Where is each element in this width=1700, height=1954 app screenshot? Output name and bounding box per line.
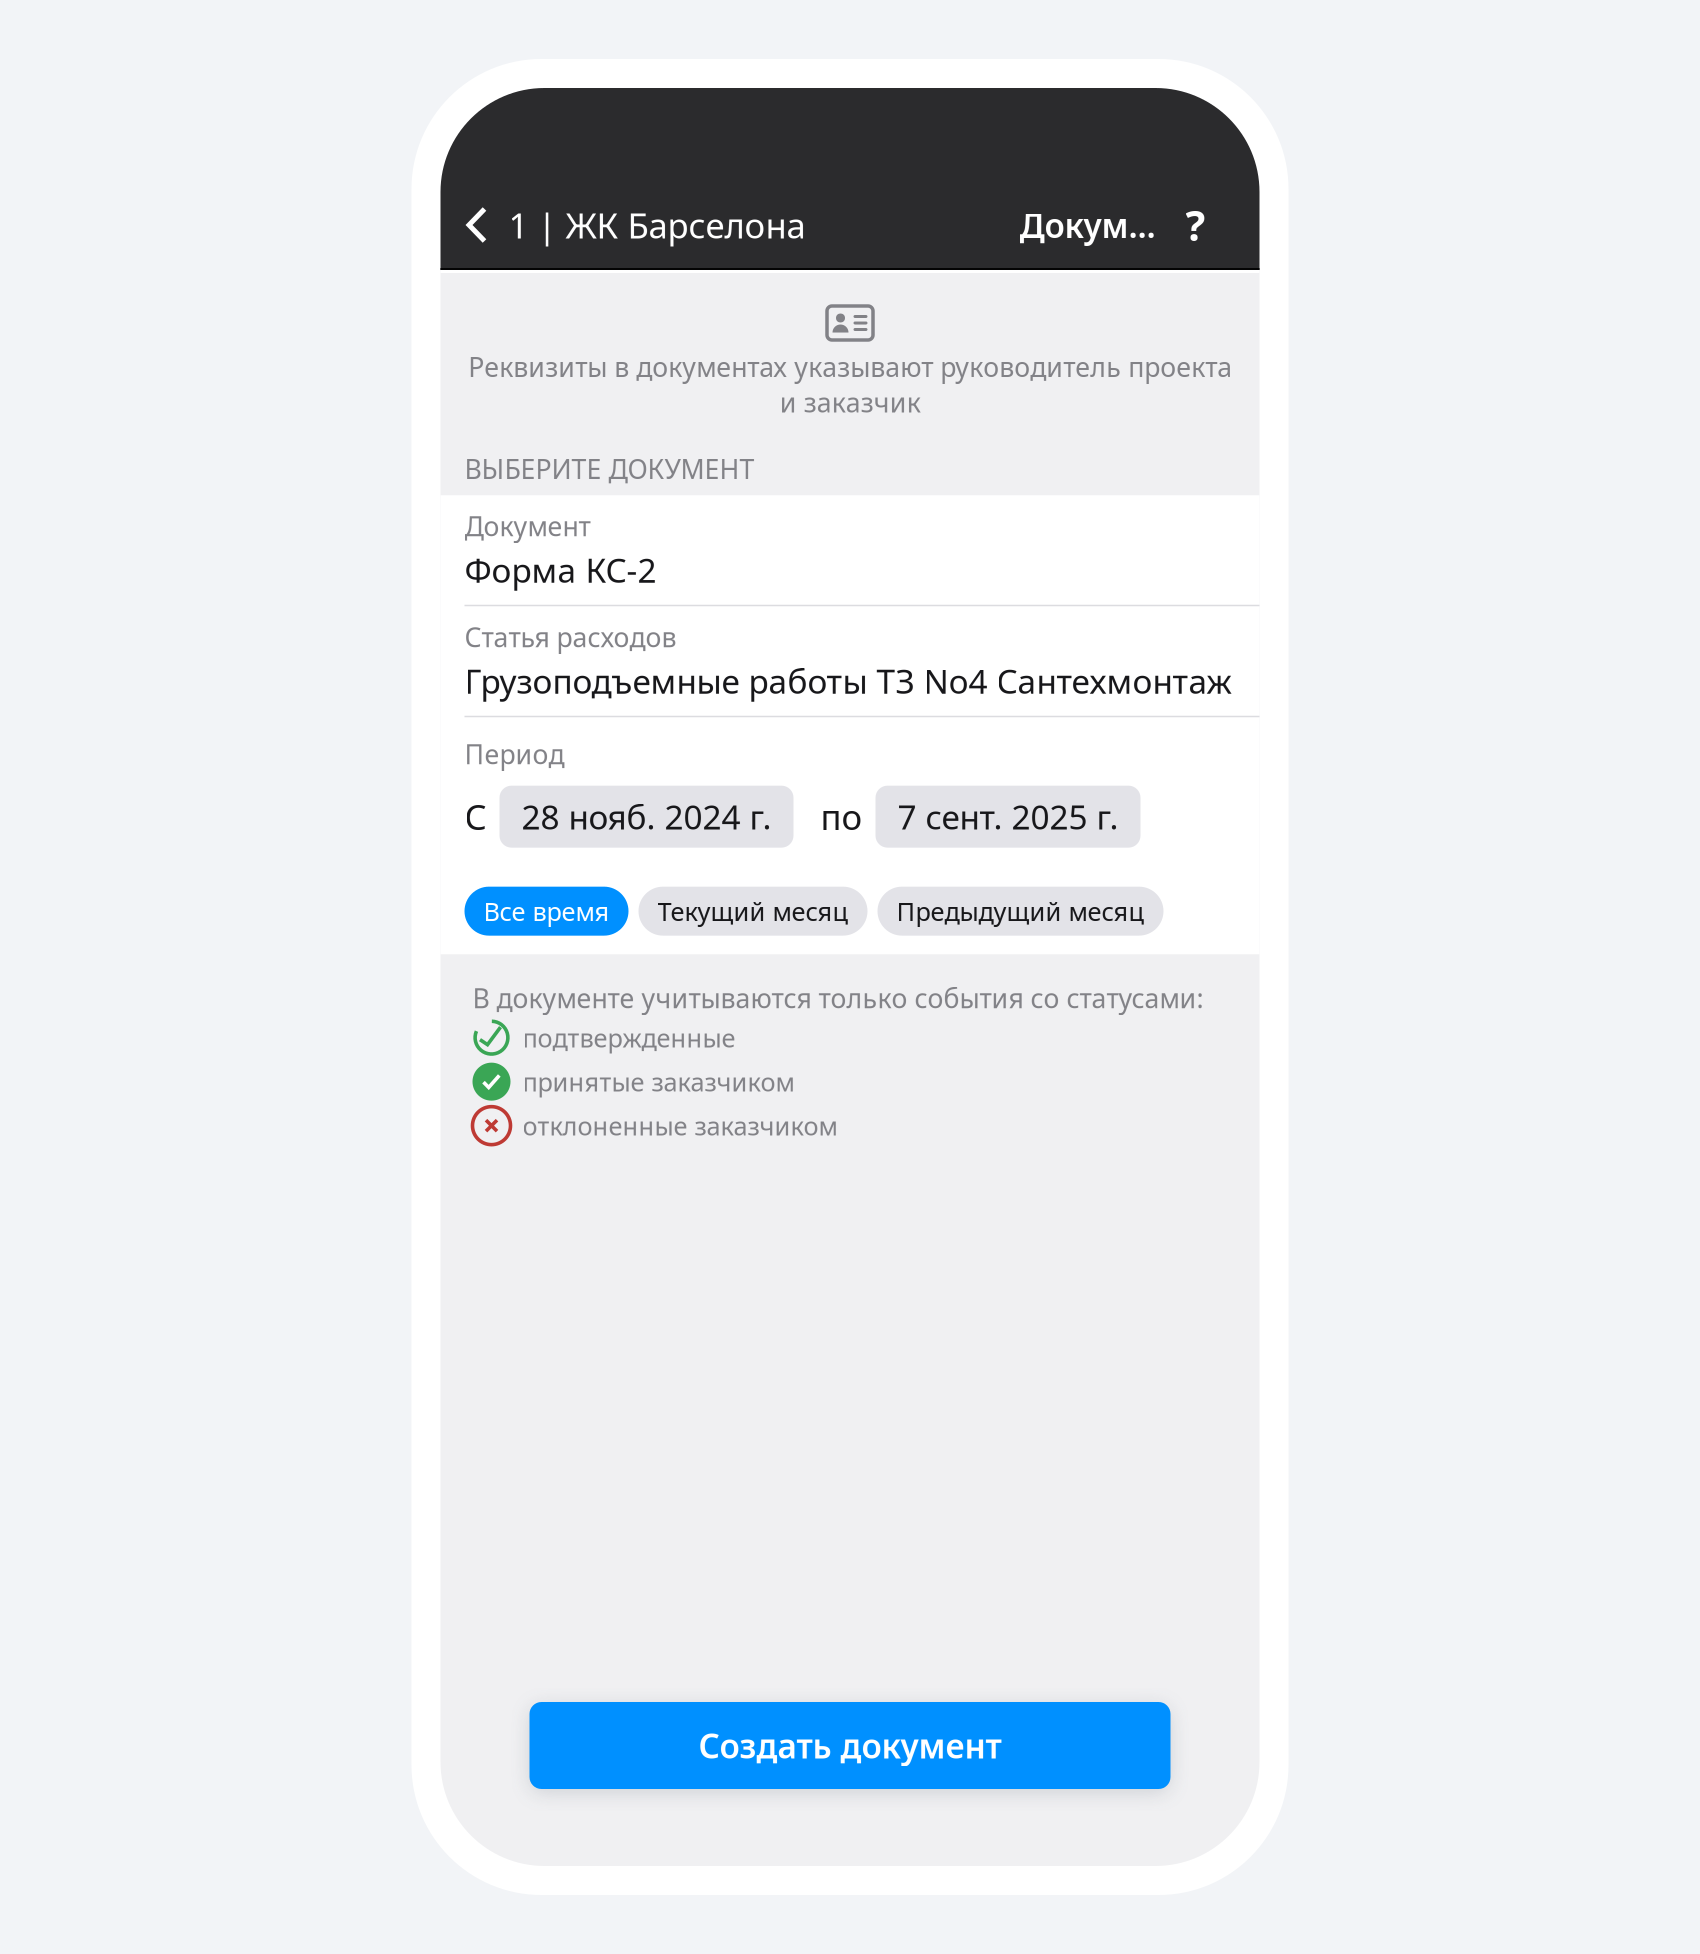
staticText: принятые заказчиком (522, 1065, 794, 1098)
button[interactable]: Предыдущий месяц (877, 887, 1163, 936)
staticText: по (820, 794, 862, 840)
staticText: Период (464, 736, 564, 772)
staticText: Статья расходов (464, 619, 676, 655)
staticText: Грузоподъемные работы ТЗ No4 Сантехмонта… (464, 659, 1231, 703)
staticText: Все время (483, 894, 609, 928)
staticText: Докум... (1019, 203, 1155, 247)
staticText: С (464, 794, 486, 840)
button[interactable]: 28 нояб. 2024 г. (499, 786, 793, 848)
staticText: В документе учитываются только события с… (472, 980, 1203, 1016)
button[interactable]: Справка (1163, 192, 1259, 258)
button[interactable]: Статья расходов (440, 606, 1259, 716)
button[interactable]: 1 | ЖК Барселона (440, 192, 815, 258)
staticText: отклоненные заказчиком (522, 1109, 837, 1142)
staticText: 1 | ЖК Барселона (508, 202, 805, 248)
staticText: Документ (464, 508, 590, 544)
button[interactable]: Все время (464, 887, 628, 936)
staticText: ? (1185, 198, 1205, 252)
button[interactable]: 7 сент. 2025 г. (875, 786, 1140, 848)
staticText: Предыдущий месяц (896, 894, 1144, 928)
staticText: 7 сент. 2025 г. (897, 794, 1118, 839)
staticText: Реквизиты в документах указывают руковод… (468, 349, 1232, 420)
staticText: подтвержденные (522, 1021, 735, 1054)
staticText: Создать документ (698, 1723, 1001, 1768)
staticText: Форма КС-2 (464, 548, 656, 592)
button[interactable]: Документ (440, 495, 1259, 605)
staticText: ВЫБЕРИТЕ ДОКУМЕНТ (464, 451, 754, 486)
button[interactable]: Текущий месяц (638, 887, 867, 936)
staticText: 28 нояб. 2024 г. (521, 794, 771, 839)
button[interactable]: Создать документ (529, 1702, 1170, 1789)
staticText: Текущий месяц (657, 894, 848, 928)
button[interactable]: Докум... (1011, 192, 1163, 258)
